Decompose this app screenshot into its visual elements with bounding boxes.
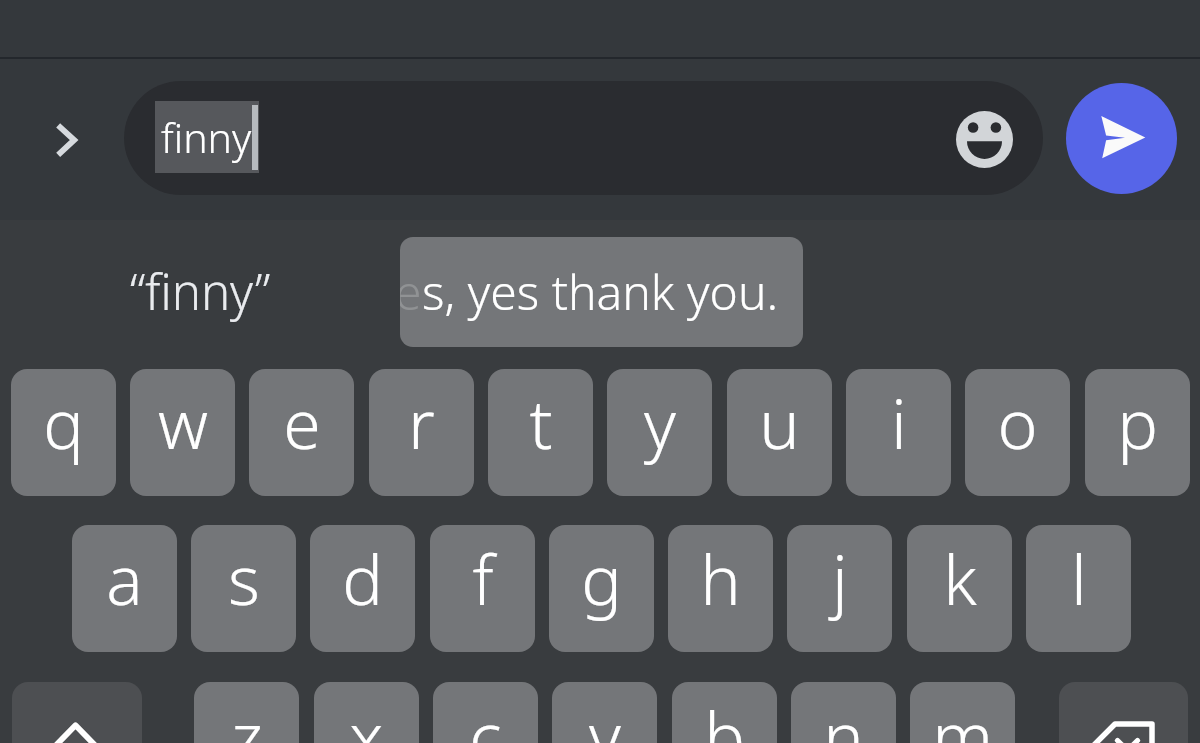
staticText: j xyxy=(832,532,848,625)
staticText: i xyxy=(891,376,907,469)
button[interactable]: j xyxy=(787,525,892,652)
button[interactable]: w xyxy=(130,369,235,496)
staticText: n xyxy=(823,689,864,743)
button[interactable]: Emoji xyxy=(956,111,1013,168)
button[interactable]: k xyxy=(907,525,1012,652)
staticText: o xyxy=(997,376,1038,469)
staticText: a xyxy=(106,532,143,625)
staticText: e xyxy=(400,259,422,324)
button[interactable]: t xyxy=(488,369,593,496)
button[interactable]: x xyxy=(314,682,419,743)
button[interactable]: q xyxy=(11,369,116,496)
staticText: z xyxy=(231,689,263,743)
button[interactable]: Backspace xyxy=(1059,682,1188,743)
button[interactable]: i xyxy=(846,369,951,496)
button[interactable]: u xyxy=(727,369,832,496)
staticText: e xyxy=(283,376,321,469)
staticText: w xyxy=(158,376,208,469)
button[interactable]: e xyxy=(400,237,803,347)
button[interactable]: s xyxy=(191,525,296,652)
staticText: v xyxy=(589,689,621,743)
button[interactable]: m xyxy=(910,682,1015,743)
staticText: m xyxy=(932,689,993,743)
button[interactable]: e xyxy=(249,369,354,496)
staticText: p xyxy=(1117,376,1158,469)
button[interactable]: “finny” xyxy=(130,258,271,325)
staticText: r xyxy=(408,376,435,469)
staticText: t xyxy=(529,376,553,469)
button[interactable]: g xyxy=(549,525,654,652)
staticText: finny xyxy=(161,109,252,165)
button[interactable]: f xyxy=(430,525,535,652)
button[interactable]: o xyxy=(965,369,1070,496)
staticText: g xyxy=(581,532,622,625)
button[interactable]: n xyxy=(791,682,896,743)
staticText: l xyxy=(1071,532,1087,625)
button[interactable]: b xyxy=(672,682,777,743)
staticText: k xyxy=(943,532,977,625)
staticText: c xyxy=(469,689,502,743)
button[interactable]: c xyxy=(433,682,538,743)
staticText: u xyxy=(759,376,800,469)
button[interactable]: Shift xyxy=(12,682,142,743)
staticText: x xyxy=(349,689,384,743)
staticText: d xyxy=(342,532,383,625)
button[interactable]: h xyxy=(668,525,773,652)
staticText: b xyxy=(704,689,745,743)
button[interactable]: Expand actions xyxy=(36,100,116,180)
button[interactable]: y xyxy=(607,369,712,496)
button[interactable]: p xyxy=(1085,369,1190,496)
staticText: f xyxy=(472,532,494,625)
button[interactable]: v xyxy=(552,682,657,743)
button[interactable]: r xyxy=(369,369,474,496)
button[interactable]: Send xyxy=(1066,83,1177,194)
staticText: y xyxy=(644,376,676,469)
button[interactable]: z xyxy=(194,682,299,743)
staticText: s xyxy=(228,532,260,625)
button[interactable]: d xyxy=(310,525,415,652)
button[interactable]: l xyxy=(1026,525,1131,652)
staticText: s, yes thank you. xyxy=(422,259,779,324)
staticText: q xyxy=(43,376,84,469)
button[interactable]: a xyxy=(72,525,177,652)
staticText: h xyxy=(700,532,741,625)
button[interactable]: finny xyxy=(124,81,1043,195)
